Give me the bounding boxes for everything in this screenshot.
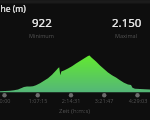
staticText: Minimum: [29, 32, 54, 39]
staticText: 2:14:31: [55, 97, 87, 104]
staticText: Maximal: [115, 32, 138, 39]
staticText: 4:29:03: [122, 97, 150, 104]
staticText: 2.150: [112, 15, 142, 31]
staticText: 1:07:15: [22, 97, 54, 104]
staticText: Zeit (h:m:s): [59, 107, 91, 115]
staticText: 922: [32, 15, 52, 31]
staticText: Höhe (m): [0, 3, 26, 15]
staticText: 3:21:47: [88, 97, 120, 104]
staticText: 0:00: [0, 97, 21, 104]
